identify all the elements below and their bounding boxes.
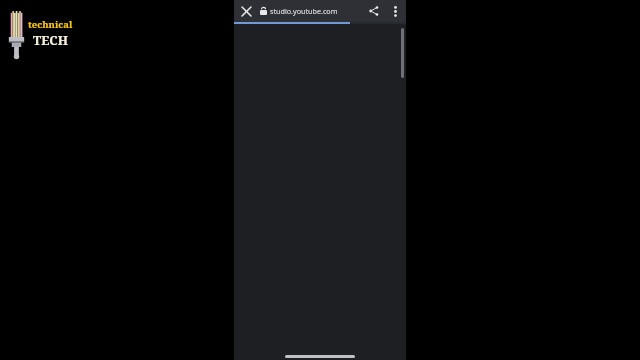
button[interactable]: Home [285,355,355,358]
button[interactable]: More options [385,1,405,21]
staticText: TECH [33,32,68,49]
button[interactable]: studio.youtube.com [260,0,338,22]
staticText: studio.youtube.com [270,6,338,16]
button[interactable]: Share [363,0,385,22]
staticText: technical [28,18,73,31]
button[interactable]: Close [236,1,256,21]
